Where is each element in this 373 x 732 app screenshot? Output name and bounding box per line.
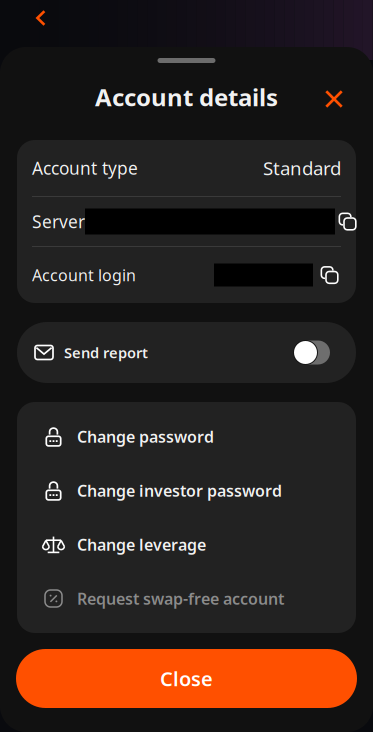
button[interactable]: Change password — [17, 409, 356, 463]
button[interactable]: Close — [316, 79, 352, 115]
button[interactable]: Request swap-free account — [17, 571, 356, 625]
staticText: Close — [160, 665, 213, 692]
button[interactable]: Close — [16, 649, 357, 708]
button[interactable]: Change leverage — [17, 517, 356, 571]
button[interactable]: Change investor password — [17, 463, 356, 517]
staticText: Standard — [263, 156, 341, 180]
button[interactable]: Back — [21, 0, 61, 36]
staticText: Request swap-free account — [77, 588, 284, 609]
staticText: Server — [32, 210, 85, 233]
staticText: Account login — [32, 264, 136, 286]
button[interactable]: Send report — [17, 322, 356, 383]
staticText: Change password — [77, 426, 214, 447]
staticText: Change investor password — [77, 480, 282, 501]
staticText: Send report — [64, 343, 148, 362]
button[interactable]: Copy account login — [317, 262, 342, 288]
staticText: Change leverage — [77, 534, 206, 555]
staticText: Account type — [32, 156, 138, 179]
staticText: Account details — [95, 81, 278, 113]
button[interactable]: Copy server — [335, 208, 360, 234]
